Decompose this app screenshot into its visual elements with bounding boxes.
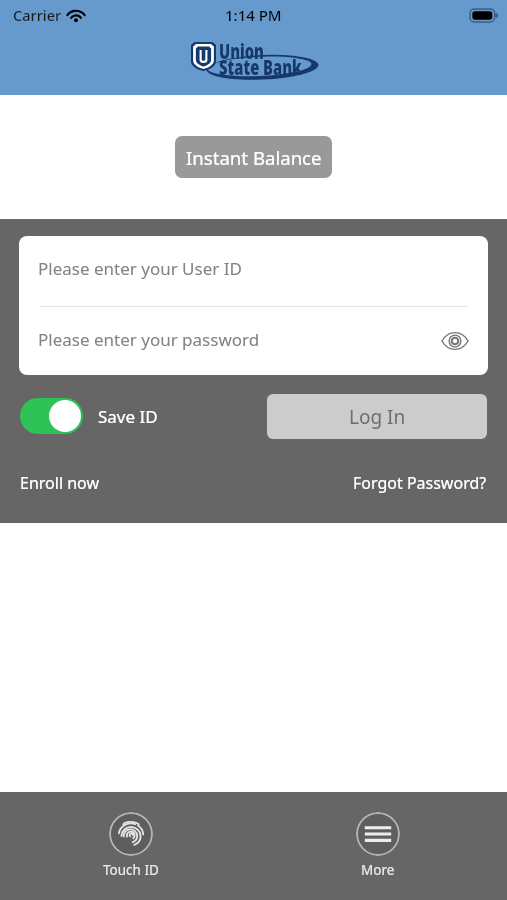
staticText: More bbox=[361, 861, 395, 879]
button[interactable]: Please enter your User ID bbox=[19, 236, 488, 306]
button[interactable]: More bbox=[343, 812, 412, 879]
button[interactable]: Show password bbox=[438, 324, 472, 358]
staticText: State Bank bbox=[219, 53, 302, 82]
button[interactable]: Please enter your password bbox=[19, 307, 488, 375]
staticText: Carrier bbox=[13, 5, 62, 25]
button[interactable]: Instant Balance bbox=[175, 136, 332, 178]
staticText: 1:14 PM bbox=[225, 5, 282, 25]
staticText: Save ID bbox=[98, 405, 158, 428]
staticText: Please enter your password bbox=[38, 328, 260, 351]
staticText: Please enter your User ID bbox=[38, 257, 242, 280]
button[interactable]: Save ID bbox=[20, 398, 158, 434]
button[interactable]: Forgot Password? bbox=[353, 472, 487, 494]
staticText: Enroll now bbox=[20, 472, 99, 494]
staticText: Union bbox=[219, 37, 264, 66]
staticText: Forgot Password? bbox=[353, 472, 487, 494]
staticText: Instant Balance bbox=[186, 145, 322, 170]
button[interactable]: Log In bbox=[267, 394, 487, 439]
button[interactable]: Enroll now bbox=[20, 472, 99, 494]
button[interactable]: Touch ID bbox=[96, 812, 165, 879]
staticText: Log In bbox=[349, 404, 406, 430]
staticText: Touch ID bbox=[103, 861, 159, 879]
